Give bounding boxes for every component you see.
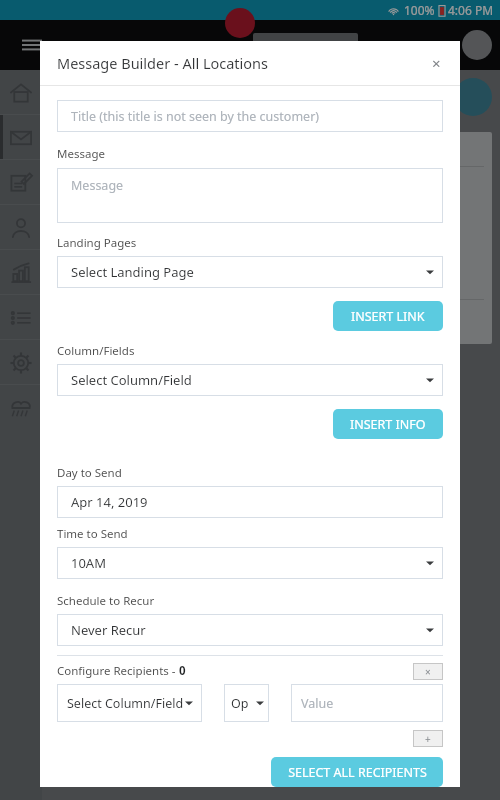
button[interactable]: SELECT ALL RECIPIENTS [271, 757, 443, 787]
staticText: Landing Pages [57, 235, 137, 251]
button[interactable]: list [0, 295, 42, 340]
button[interactable]: Value [291, 684, 443, 722]
staticText: Never Recur [71, 621, 146, 639]
staticText: promo_build [58, 173, 124, 188]
button[interactable]: Op [224, 684, 269, 722]
staticText: 4:06 PM [448, 2, 494, 18]
staticText: Value [301, 695, 334, 712]
staticText: SELECT ALL RECIPIENTS [288, 764, 427, 781]
staticText: × [425, 665, 431, 679]
button[interactable]: mail [0, 115, 42, 160]
staticText: Message [57, 146, 105, 162]
staticText: Select Column/Field [67, 695, 184, 712]
button[interactable]: Message [57, 168, 443, 223]
staticText: Time to Send [57, 526, 128, 542]
staticText: Apr 14, 2019 [71, 493, 148, 511]
button[interactable]: Remove recipient filter [413, 663, 443, 680]
button[interactable]: edit [0, 160, 42, 205]
staticText: Op [231, 695, 249, 712]
button[interactable]: Title (this title is not seen by the cus… [57, 100, 443, 132]
staticText: 10AM [71, 554, 106, 572]
button[interactable]: Select Column/Field [57, 364, 443, 396]
staticText: Day to Send [57, 465, 122, 481]
staticText: Schedule to Recur [57, 593, 155, 609]
staticText: Configure Recipients - [57, 663, 179, 679]
staticText: Column/Fields [57, 343, 135, 359]
button[interactable]: Select Landing Page [57, 256, 443, 288]
staticText: Upcoming Message [58, 140, 185, 158]
button[interactable]: Menu [18, 31, 46, 59]
button[interactable]: Add recipient filter [413, 730, 443, 747]
staticText: 100% [404, 2, 435, 18]
staticText: + [425, 732, 431, 746]
button[interactable]: Apr 14, 2019 [57, 486, 443, 518]
staticText: Title (this title is not seen by the cus… [71, 108, 320, 125]
staticText: sign up for [58, 248, 114, 263]
button[interactable]: chart [0, 250, 42, 295]
staticText: Message [71, 177, 124, 194]
staticText: ends with a [58, 218, 118, 233]
button[interactable]: cloud [0, 385, 42, 430]
staticText: INSERT LINK [351, 308, 425, 325]
staticText: 0 [179, 663, 186, 679]
staticText: remember [58, 263, 113, 278]
button[interactable]: gear [0, 340, 42, 385]
button[interactable]: INSERT INFO [333, 409, 443, 439]
staticText: INSERT INFO [350, 416, 426, 433]
staticText: discount! [58, 278, 106, 293]
button[interactable]: 10AM [57, 547, 443, 579]
button[interactable]: INSERT LINK [333, 301, 443, 331]
button[interactable]: Close [424, 51, 448, 75]
staticText: Select Landing Page [71, 263, 194, 281]
button[interactable]: Select Column/Field [57, 684, 202, 722]
staticText: give more [58, 233, 110, 248]
button[interactable]: person [0, 205, 42, 250]
button[interactable]: home [0, 70, 42, 115]
button[interactable]: Never Recur [57, 614, 443, 646]
staticText: Message Builder - All Locations [57, 53, 269, 73]
staticText: Select Column/Field [71, 371, 192, 389]
staticText: Hi patient, [58, 188, 112, 203]
staticText: × [432, 53, 441, 73]
